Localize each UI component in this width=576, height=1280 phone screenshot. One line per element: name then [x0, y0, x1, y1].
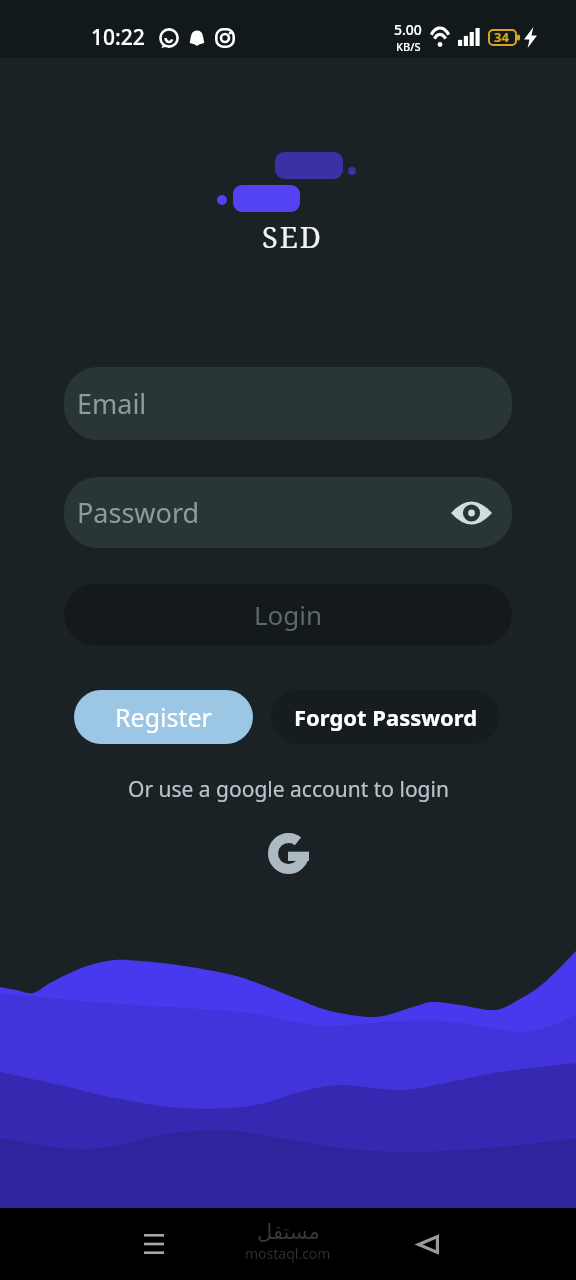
staticText: 34 — [494, 28, 509, 46]
staticText: Login — [254, 597, 323, 632]
staticText: SED — [262, 217, 323, 256]
staticText: 10:22 — [91, 23, 145, 52]
staticText: Email — [77, 385, 147, 422]
button[interactable]: Register — [74, 690, 253, 744]
button[interactable]: Sign in with Google — [265, 830, 311, 876]
button[interactable]: Show password — [449, 491, 493, 535]
button[interactable]: Password — [64, 477, 512, 548]
staticText: Register — [115, 700, 212, 734]
button[interactable]: Email — [64, 367, 512, 440]
staticText: KB/S — [396, 39, 421, 54]
button[interactable]: Menu — [129, 1219, 179, 1269]
button[interactable]: Login — [64, 584, 512, 645]
button[interactable]: Forgot Password — [271, 690, 500, 744]
staticText: مستقل — [257, 1220, 320, 1244]
staticText: Or use a google account to login — [128, 775, 449, 804]
staticText: Forgot Password — [294, 702, 478, 732]
staticText: mostaql.com — [245, 1244, 331, 1263]
button[interactable]: Back — [403, 1219, 453, 1269]
staticText: 5.00 — [394, 20, 422, 39]
staticText: Password — [77, 494, 200, 531]
